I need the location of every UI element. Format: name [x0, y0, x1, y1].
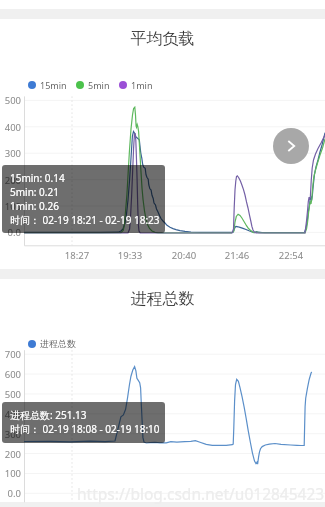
staticText: https://blog.csdn.net/u012845423: [77, 483, 325, 504]
staticText: 400: [0, 408, 21, 421]
staticText: 300: [0, 147, 21, 160]
staticText: 0.0: [0, 226, 21, 239]
staticText: 21:46: [221, 249, 253, 262]
staticText: 700: [0, 348, 21, 361]
staticText: 19:33: [114, 249, 146, 262]
staticText: 100: [0, 467, 21, 480]
staticText: 600: [0, 368, 21, 381]
staticText: 5min: 0.21: [10, 185, 59, 199]
staticText: 200: [0, 174, 21, 187]
staticText: 1min: 0.26: [10, 199, 59, 213]
staticText: 500: [0, 388, 21, 401]
staticText: 200: [0, 448, 21, 461]
staticText: 400: [0, 121, 21, 134]
staticText: 300: [0, 428, 21, 441]
staticText: 1min: [131, 79, 153, 91]
staticText: 100: [0, 200, 21, 213]
staticText: 15min: 0.14: [10, 171, 65, 185]
staticText: 时间： 02-19 18:08 - 02-19 18:10: [10, 422, 160, 436]
staticText: 18:27: [61, 249, 93, 262]
staticText: 20:40: [168, 249, 200, 262]
staticText: 5min: [88, 79, 110, 91]
staticText: 进程总数: [0, 289, 325, 309]
button[interactable]: Next: [273, 128, 309, 164]
staticText: 22:54: [275, 249, 307, 262]
staticText: 平均负载: [0, 29, 325, 49]
staticText: 进程总数: [40, 338, 76, 349]
staticText: 0.0: [0, 487, 21, 500]
staticText: 时间： 02-19 18:21 - 02-19 18:23: [10, 213, 160, 227]
staticText: 500: [0, 94, 21, 107]
staticText: 15min: [40, 79, 67, 91]
staticText: 进程总数: 251.13: [10, 408, 87, 422]
